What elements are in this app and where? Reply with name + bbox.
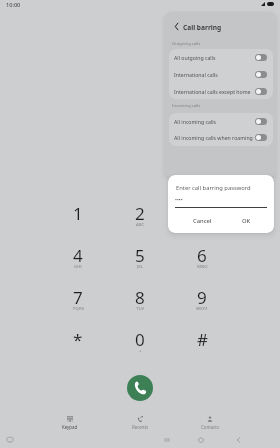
staticText: Call barring [183,23,222,32]
staticText: # [197,328,208,351]
staticText: TUV [136,305,145,311]
staticText: All incoming calls when roaming [174,134,255,141]
button[interactable]: Back [235,437,241,443]
staticText: GHI [74,263,82,269]
staticText: 4 [73,244,83,267]
button[interactable]: OK [221,213,274,229]
button[interactable]: 2 [109,193,171,235]
staticText: International calls except home [174,88,255,95]
staticText: International calls [174,71,255,78]
button[interactable]: 8 [109,277,171,319]
staticText: All incoming calls [174,118,255,125]
button[interactable]: 0 [109,319,171,361]
staticText: * [73,328,83,351]
button[interactable]: Keypad [35,410,105,432]
staticText: 1 [73,202,83,225]
button[interactable]: * [47,319,109,361]
button[interactable]: Contacts [175,410,245,432]
staticText: 8 [135,286,145,309]
button[interactable]: International calls [169,66,273,83]
staticText: Recents [132,424,149,430]
staticText: + [139,347,142,353]
button[interactable]: International calls except home [169,83,273,99]
staticText: 7 [73,286,83,309]
button[interactable]: Cancel [168,213,221,229]
button[interactable]: Home [198,437,204,443]
button[interactable]: All outgoing calls [169,49,273,66]
staticText: All outgoing calls [174,54,255,61]
staticText: 0 [135,328,145,351]
button[interactable]: 7 [47,277,109,319]
staticText: 3 [197,202,207,225]
button[interactable]: 4 [47,235,109,277]
button[interactable]: Recents [105,410,175,432]
staticText: MNO [197,263,208,269]
staticText: ABC [136,221,145,227]
staticText: 2 [135,202,145,225]
button[interactable]: 6 [171,235,233,277]
staticText: •••• [175,197,183,204]
button[interactable]: Back [169,19,183,33]
button[interactable]: 5 [109,235,171,277]
button[interactable]: Call [127,375,153,401]
button[interactable]: 1 [47,193,109,235]
staticText: OK [242,217,251,225]
staticText: DEF [198,221,206,227]
staticText: 10:00 [6,1,21,9]
button[interactable]: All incoming calls when roaming [169,129,273,145]
button[interactable]: Hide keyboard [7,437,13,443]
staticText: JKL [137,263,144,269]
staticText: Keypad [62,424,78,430]
staticText: Enter call barring password [176,184,251,192]
staticText: Outgoing calls [172,41,201,47]
staticText: Contacts [201,424,219,430]
staticText: 5 [135,244,145,267]
button[interactable]: 3 [171,193,233,235]
button[interactable]: 9 [171,277,233,319]
staticText: Cancel [193,217,212,225]
button[interactable]: All incoming calls [169,113,273,129]
staticText: Incoming calls [172,103,201,109]
staticText: 9 [197,286,207,309]
button[interactable]: # [171,319,233,361]
button[interactable]: Recent apps [164,437,170,443]
staticText: 6 [197,244,207,267]
staticText: PQRS [73,305,84,311]
staticText: WXYZ [196,305,208,311]
